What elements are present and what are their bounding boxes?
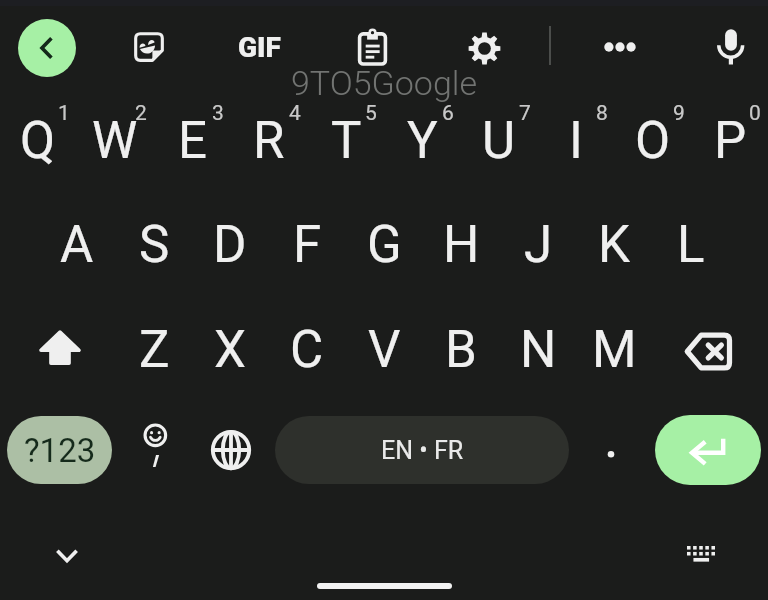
staticText: G	[367, 215, 402, 275]
staticText: F	[293, 215, 322, 275]
button[interactable]: L	[654, 208, 728, 282]
staticText: W	[92, 111, 138, 171]
button[interactable]: B	[424, 313, 498, 387]
staticText: A	[60, 215, 94, 275]
button[interactable]: A	[40, 208, 114, 282]
staticText: V	[368, 320, 401, 380]
staticText: H	[443, 215, 480, 275]
button[interactable]: F	[270, 208, 344, 282]
button[interactable]: Back	[18, 19, 76, 77]
staticText: 7	[519, 101, 531, 126]
button[interactable]: Y	[385, 104, 459, 178]
staticText: 2	[135, 101, 147, 126]
button[interactable]: Voice input	[703, 19, 759, 75]
button[interactable]: C	[270, 313, 344, 387]
staticText: D	[213, 215, 247, 275]
staticText: 4	[289, 101, 301, 126]
staticText: S	[139, 215, 170, 275]
staticText: Z	[139, 320, 170, 380]
staticText: C	[290, 320, 324, 380]
button[interactable]: E	[155, 104, 229, 178]
staticText: J	[524, 215, 553, 275]
button[interactable]: T	[309, 104, 383, 178]
button[interactable]: R	[232, 104, 306, 178]
button[interactable]: Q	[1, 104, 75, 178]
button[interactable]: Switch language	[196, 416, 266, 484]
staticText: ?123	[24, 431, 96, 470]
button[interactable]: N	[501, 313, 575, 387]
button[interactable]: Settings	[456, 20, 512, 76]
button[interactable]: M	[577, 313, 651, 387]
staticText: 6	[442, 101, 454, 126]
button[interactable]: More options	[592, 19, 648, 75]
button[interactable]: P	[693, 104, 767, 178]
button[interactable]: S	[117, 208, 191, 282]
staticText: X	[214, 320, 246, 380]
staticText: I	[569, 111, 583, 171]
button[interactable]: Clipboard	[344, 19, 400, 75]
staticText: O	[635, 111, 671, 171]
button[interactable]: Shift	[22, 311, 98, 387]
staticText: 9	[673, 101, 685, 126]
staticText: EN • FR	[381, 436, 464, 465]
staticText: 1	[58, 101, 70, 126]
staticText: M	[592, 320, 637, 380]
staticText: Q	[20, 111, 56, 171]
button[interactable]: X	[193, 313, 267, 387]
button[interactable]: Emoji	[121, 416, 191, 484]
button[interactable]: ?123	[7, 416, 112, 484]
staticText: 0	[749, 101, 761, 126]
staticText: B	[445, 320, 477, 380]
staticText: L	[677, 215, 705, 275]
button[interactable]: EN • FR	[275, 416, 569, 484]
button[interactable]: Keyboard	[674, 528, 728, 582]
button[interactable]: Enter	[655, 415, 761, 485]
staticText: P	[714, 111, 747, 171]
staticText: K	[598, 215, 630, 275]
button[interactable]: H	[424, 208, 498, 282]
staticText: R	[253, 111, 285, 171]
button[interactable]: Z	[117, 313, 191, 387]
button[interactable]: K	[577, 208, 651, 282]
button[interactable]: D	[193, 208, 267, 282]
button[interactable]: Backspace	[670, 313, 746, 389]
button[interactable]: Period	[577, 416, 645, 484]
button[interactable]: J	[501, 208, 575, 282]
staticText: Y	[407, 111, 438, 171]
button[interactable]: W	[78, 104, 152, 178]
staticText: GIF	[238, 31, 281, 64]
button[interactable]: U	[462, 104, 536, 178]
staticText: 8	[596, 101, 608, 126]
staticText: T	[331, 111, 362, 171]
staticText: 5	[365, 101, 377, 126]
button[interactable]: Hide keyboard	[40, 528, 94, 582]
button[interactable]: Stickers	[121, 19, 177, 75]
staticText: 9TO5Google	[291, 63, 477, 103]
staticText: 3	[212, 101, 224, 126]
button[interactable]: GIF	[229, 21, 289, 73]
staticText: E	[178, 111, 207, 171]
button[interactable]: G	[347, 208, 421, 282]
button[interactable]: O	[616, 104, 690, 178]
staticText: N	[520, 320, 557, 380]
button[interactable]: I	[539, 104, 613, 178]
button[interactable]: V	[347, 313, 421, 387]
staticText: U	[482, 111, 516, 171]
